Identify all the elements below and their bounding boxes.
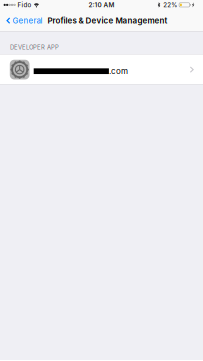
button[interactable]: General: [0, 12, 43, 29]
staticText: General: [13, 16, 43, 25]
staticText: 2:10 AM: [88, 1, 114, 9]
button[interactable]: .com: [0, 55, 203, 85]
staticText: Fido: [17, 1, 31, 9]
staticText: Profiles & Device Management: [47, 16, 167, 25]
staticText: .com: [109, 66, 128, 76]
staticText: DEVELOPER APP: [10, 44, 59, 51]
staticText: 22%: [163, 1, 177, 9]
